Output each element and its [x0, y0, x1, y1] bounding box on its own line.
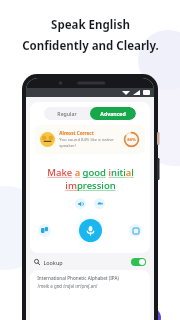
staticText: Almost Correct	[59, 130, 94, 136]
staticText: International Phonetic Alphabet (IPA)	[37, 275, 119, 281]
button[interactable]: Regular	[44, 107, 90, 120]
button[interactable]: Play audio	[75, 198, 86, 209]
staticText: 84%	[127, 137, 136, 143]
staticText: Speak English	[51, 17, 130, 33]
staticText: speaker!	[59, 143, 76, 149]
button[interactable]: Record	[79, 219, 102, 242]
staticText: Confidently and Clearly.	[22, 38, 159, 54]
button[interactable]: Bookmark	[129, 224, 142, 237]
staticText: Regular	[57, 110, 77, 117]
button[interactable]: Almost Correct	[40, 130, 140, 149]
button[interactable]: Lookup	[34, 258, 146, 266]
button[interactable]: Compare	[38, 224, 51, 237]
staticText: Lookup	[43, 259, 63, 266]
staticText: You sound 84% like a native	[59, 137, 114, 143]
staticText: /meik ə gʊd ɪˈnɪʃəl ɪmˈpreʃ.ən/	[37, 283, 98, 289]
button[interactable]: Advanced	[90, 107, 136, 120]
button[interactable]: Slow audio	[94, 198, 105, 209]
staticText: Advanced	[100, 110, 126, 117]
button[interactable]: Lookup toggle	[131, 258, 146, 266]
staticText: Make a good initial impression	[47, 166, 134, 192]
